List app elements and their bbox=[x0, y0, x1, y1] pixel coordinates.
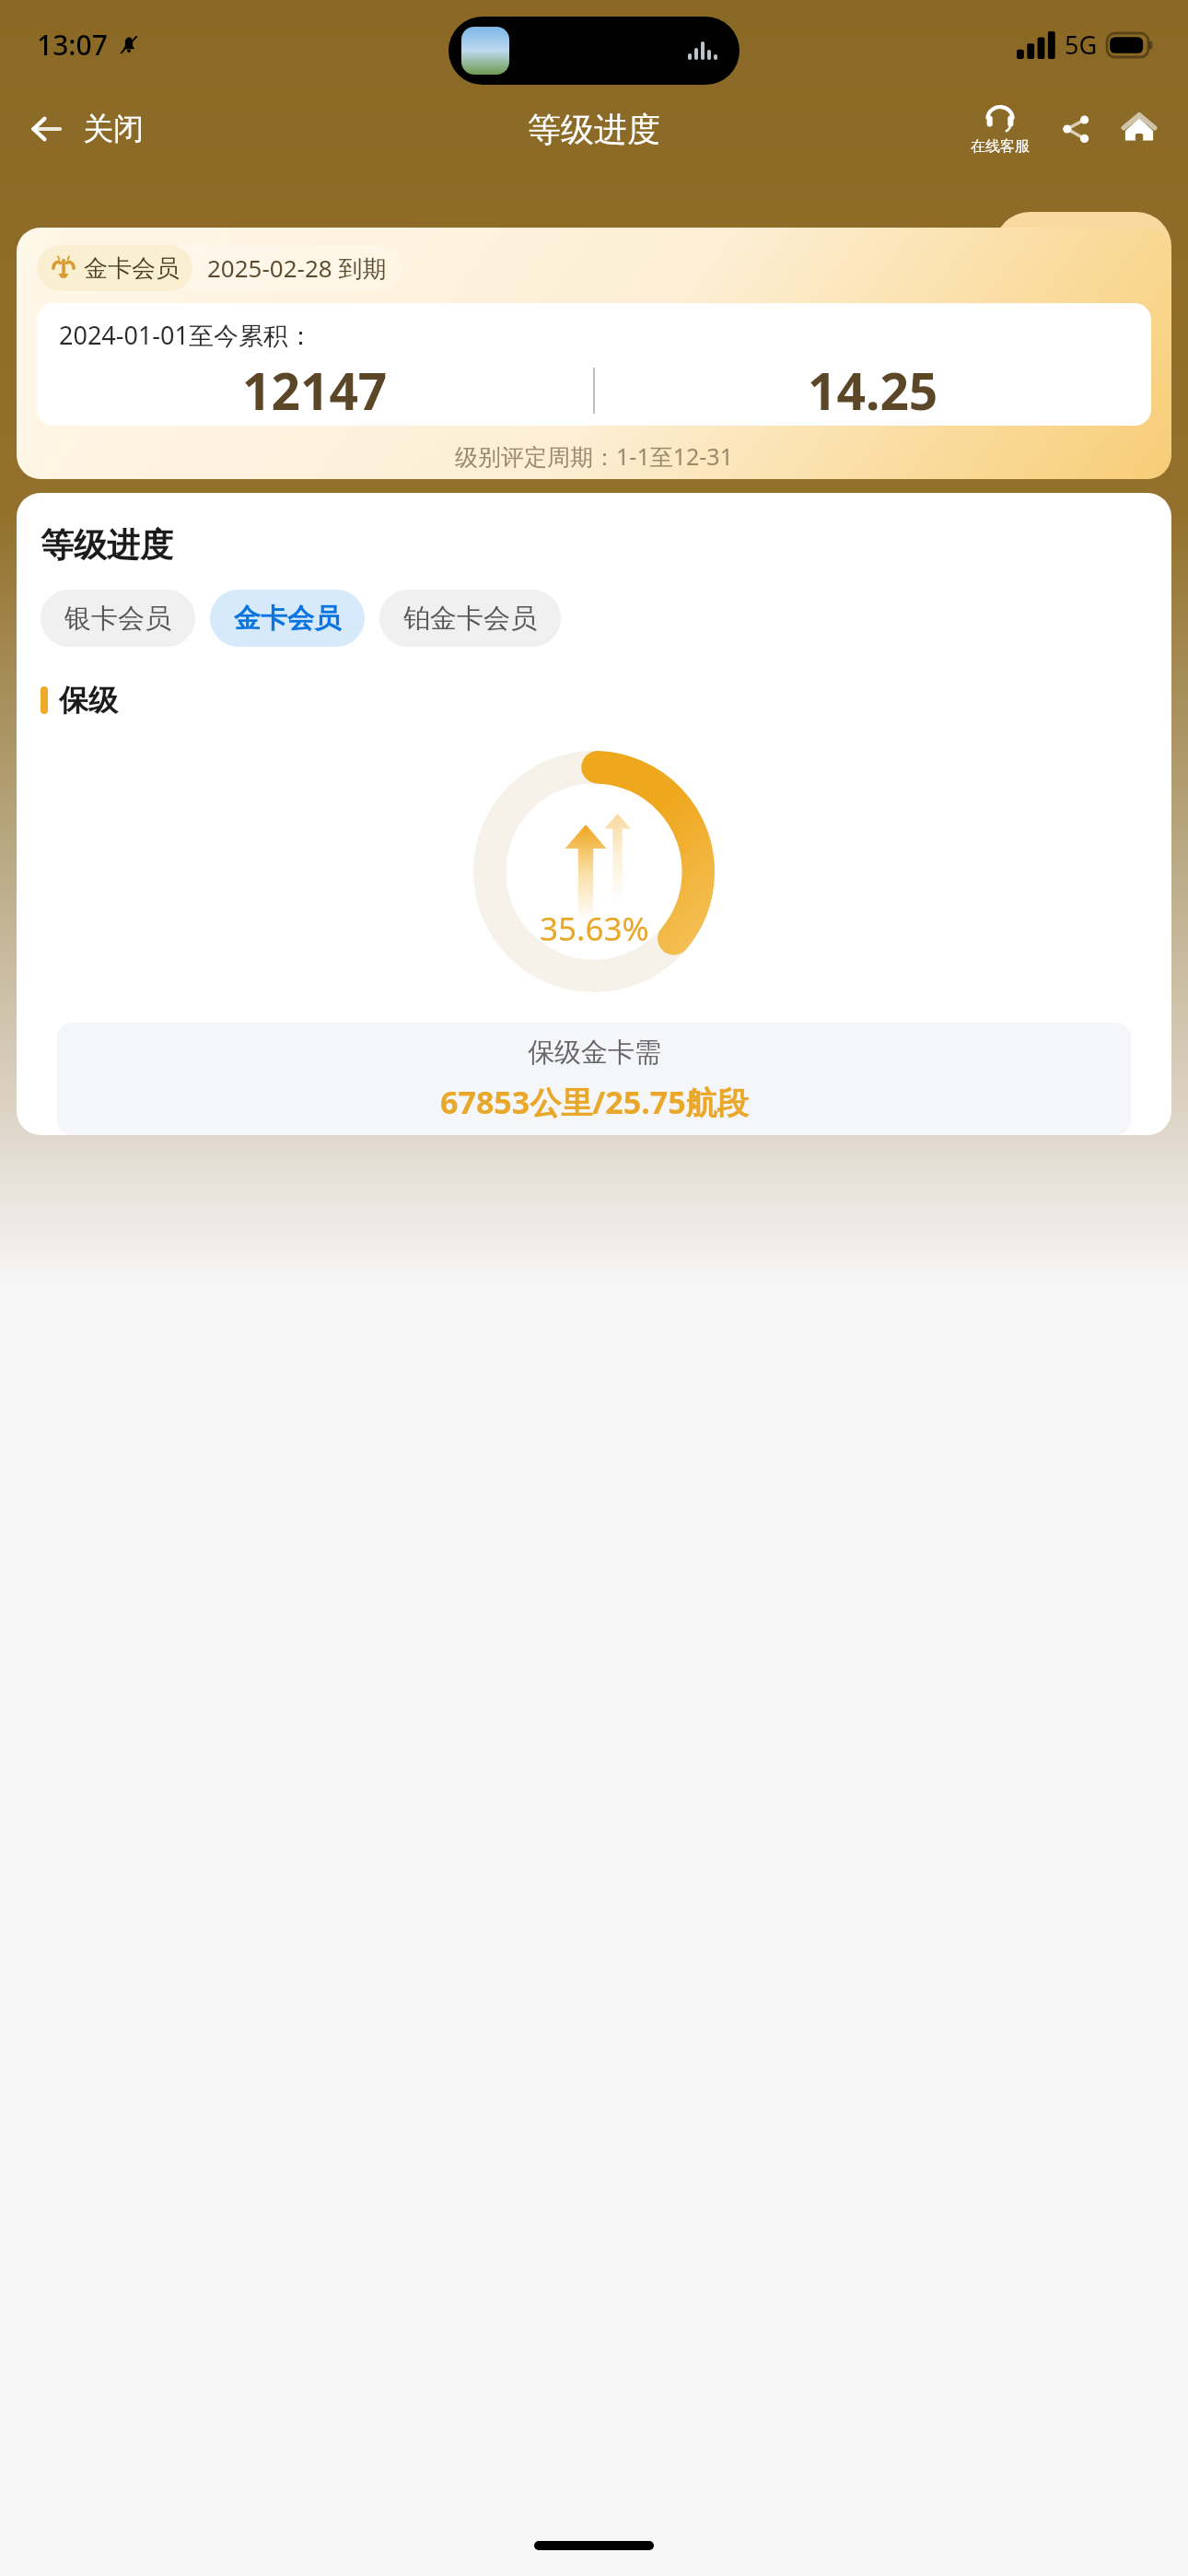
staticText: 银卡会员 bbox=[64, 602, 171, 636]
staticText: 12147 bbox=[242, 356, 388, 425]
staticText: 2025-02-28 到期 bbox=[207, 252, 387, 285]
other: Back bbox=[28, 111, 64, 147]
staticText: 14.25 bbox=[808, 356, 938, 425]
staticText: 关闭 bbox=[83, 110, 144, 148]
button[interactable]: Back bbox=[17, 104, 155, 154]
button[interactable]: 在线客服 bbox=[965, 100, 1035, 158]
staticText: 67853公里/25.75航段 bbox=[440, 1081, 749, 1123]
staticText: 金卡会员 bbox=[84, 253, 180, 284]
staticText: 在线客服 bbox=[971, 137, 1030, 156]
button[interactable]: 银卡会员 bbox=[41, 590, 195, 647]
button[interactable]: 金卡会员 bbox=[17, 228, 1171, 479]
button[interactable]: Home bbox=[1114, 104, 1164, 154]
staticText: 等级进度 bbox=[41, 524, 173, 566]
button[interactable]: 进入卡包 bbox=[995, 212, 1171, 282]
staticText: 等级进度 bbox=[528, 109, 660, 150]
staticText: 保级 bbox=[59, 682, 118, 719]
button[interactable]: 金卡会员 bbox=[210, 590, 365, 647]
staticText: 铂金卡会员 bbox=[403, 602, 537, 636]
staticText: 保级金卡需 bbox=[528, 1036, 661, 1070]
staticText: 进入卡包 bbox=[1019, 230, 1125, 264]
staticText: 级别评定周期：1-1至12-31 bbox=[17, 440, 1171, 472]
button[interactable]: 铂金卡会员 bbox=[379, 590, 561, 647]
button[interactable]: Share bbox=[1052, 105, 1100, 153]
staticText: 35.63% bbox=[540, 907, 649, 951]
staticText: 金卡会员 bbox=[234, 602, 341, 636]
staticText: 13:07 bbox=[37, 26, 108, 64]
staticText: 5G bbox=[1065, 28, 1098, 62]
staticText: 2024-01-01至今累积： bbox=[59, 318, 313, 352]
